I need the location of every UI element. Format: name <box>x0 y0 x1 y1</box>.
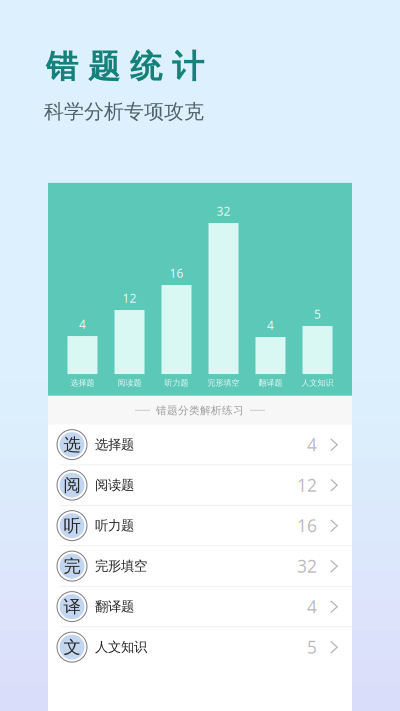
staticText: 4 <box>79 316 86 332</box>
staticText: 4 <box>267 317 274 333</box>
staticText: 翻译题 <box>95 598 134 615</box>
staticText: 12 <box>297 474 317 497</box>
staticText: 完形填空 <box>95 558 147 574</box>
staticText: 4 <box>307 595 317 618</box>
staticText: 32 <box>216 203 230 219</box>
staticText: 12 <box>122 290 136 306</box>
staticText: 翻译题 <box>258 378 282 388</box>
staticText: 5 <box>307 636 317 659</box>
button[interactable]: 选 <box>48 425 352 465</box>
staticText: 听力题 <box>164 378 188 388</box>
staticText: 4 <box>307 433 317 456</box>
button[interactable]: 译 <box>48 587 352 627</box>
staticText: 听 <box>63 515 80 536</box>
staticText: 16 <box>297 514 317 537</box>
staticText: 文 <box>63 636 80 658</box>
button[interactable]: 完 <box>48 546 352 587</box>
staticText: 完 <box>63 555 80 577</box>
staticText: 阅 <box>63 474 80 496</box>
staticText: 32 <box>297 555 317 578</box>
staticText: 选择题 <box>70 378 94 388</box>
staticText: 选择题 <box>95 436 134 453</box>
staticText: 错题统计 <box>46 47 204 86</box>
button[interactable]: 听 <box>48 506 352 546</box>
staticText: 阅读题 <box>117 378 141 388</box>
staticText: 错题分类解析练习 <box>156 404 244 417</box>
staticText: 选 <box>63 434 80 455</box>
staticText: 完形填空 <box>207 378 239 388</box>
staticText: 译 <box>63 596 80 617</box>
staticText: 科学分析专项攻克 <box>44 99 204 124</box>
staticText: 人文知识 <box>301 378 333 388</box>
staticText: 人文知识 <box>95 639 147 655</box>
staticText: 听力题 <box>95 517 134 534</box>
staticText: 5 <box>314 306 321 322</box>
staticText: 16 <box>169 265 183 281</box>
button[interactable]: 文 <box>48 627 352 668</box>
button[interactable]: 阅 <box>48 465 352 506</box>
staticText: 阅读题 <box>95 477 134 493</box>
